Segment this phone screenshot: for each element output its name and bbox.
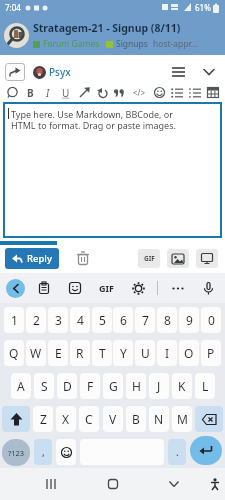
button[interactable] bbox=[151, 83, 167, 102]
staticText: S bbox=[41, 378, 48, 394]
button[interactable] bbox=[33, 277, 55, 299]
button[interactable]: P bbox=[201, 340, 221, 366]
staticText: 4 bbox=[77, 312, 84, 328]
staticText: E bbox=[55, 345, 62, 361]
button[interactable] bbox=[2, 406, 30, 432]
button[interactable]: U bbox=[58, 83, 74, 102]
staticText: Stratagem-21 - Signup (8/11) bbox=[33, 21, 181, 35]
staticText: A bbox=[17, 378, 25, 394]
staticText: Type here. Use Markdown, BBCode, or HTML… bbox=[11, 108, 176, 132]
button[interactable]: F bbox=[80, 373, 100, 399]
button[interactable] bbox=[167, 249, 189, 268]
button[interactable]: Type here. Use Markdown, BBCode, or HTML… bbox=[3, 102, 222, 238]
button[interactable]: ?123 bbox=[2, 439, 30, 466]
button[interactable]: Z bbox=[33, 406, 53, 432]
button[interactable]: 9 bbox=[179, 307, 199, 333]
button[interactable]: D bbox=[57, 373, 77, 399]
staticText: I bbox=[165, 345, 170, 361]
button[interactable]: H bbox=[126, 373, 146, 399]
staticText: J bbox=[157, 378, 161, 394]
button[interactable]: B bbox=[22, 83, 38, 102]
staticText: Psyx bbox=[49, 65, 71, 79]
button[interactable]: O bbox=[179, 340, 199, 366]
staticText: H bbox=[132, 378, 141, 394]
button[interactable]: B bbox=[126, 406, 146, 432]
button[interactable]: E bbox=[48, 340, 68, 366]
button[interactable]: Q bbox=[4, 340, 24, 366]
button[interactable]: C bbox=[79, 406, 99, 432]
button[interactable] bbox=[167, 277, 189, 299]
button[interactable]: Psyx bbox=[33, 65, 71, 79]
button[interactable] bbox=[76, 83, 92, 102]
button[interactable] bbox=[94, 83, 110, 102]
button[interactable] bbox=[4, 83, 20, 102]
staticText: U bbox=[62, 86, 70, 100]
button[interactable] bbox=[56, 439, 76, 465]
button[interactable]: I bbox=[157, 340, 177, 366]
staticText: X bbox=[62, 411, 70, 427]
button[interactable]: M bbox=[172, 406, 192, 432]
button[interactable]: T bbox=[92, 340, 112, 366]
button[interactable]: R bbox=[70, 340, 90, 366]
button[interactable] bbox=[6, 279, 25, 298]
staticText: 61% bbox=[195, 2, 211, 13]
staticText: U bbox=[141, 345, 150, 361]
button[interactable]: Stratagem-21 - Signup (8/11) bbox=[33, 21, 198, 50]
button[interactable] bbox=[197, 277, 219, 299]
button[interactable]: K bbox=[172, 373, 192, 399]
button[interactable] bbox=[200, 63, 218, 81]
button[interactable]: N bbox=[149, 406, 169, 432]
button[interactable]: G bbox=[103, 373, 123, 399]
button[interactable] bbox=[169, 83, 185, 102]
button[interactable]: 4 bbox=[70, 307, 90, 333]
button[interactable]: 6 bbox=[113, 307, 133, 333]
button[interactable] bbox=[127, 277, 149, 299]
button[interactable]: Reply bbox=[5, 248, 59, 269]
button[interactable] bbox=[5, 63, 25, 81]
button[interactable]: GIF bbox=[94, 276, 118, 300]
button[interactable] bbox=[190, 436, 222, 465]
button[interactable]: I bbox=[40, 83, 56, 102]
button[interactable] bbox=[205, 83, 221, 102]
button[interactable] bbox=[196, 249, 218, 268]
button[interactable]: W bbox=[26, 340, 46, 366]
button[interactable]: 1 bbox=[4, 307, 24, 333]
button[interactable]: 3 bbox=[48, 307, 68, 333]
button[interactable] bbox=[195, 406, 223, 432]
button[interactable]: 5 bbox=[92, 307, 112, 333]
button[interactable] bbox=[163, 473, 185, 495]
button[interactable] bbox=[40, 473, 62, 495]
staticText: W bbox=[30, 345, 42, 361]
button[interactable]: X bbox=[56, 406, 76, 432]
button[interactable]: 2 bbox=[26, 307, 46, 333]
button[interactable] bbox=[187, 83, 203, 102]
staticText: B bbox=[132, 411, 140, 427]
button[interactable]: 0 bbox=[201, 307, 221, 333]
button[interactable] bbox=[168, 63, 188, 81]
button[interactable]: L bbox=[195, 373, 215, 399]
button[interactable]: 8 bbox=[157, 307, 177, 333]
button[interactable]: </> bbox=[129, 83, 149, 102]
button[interactable]: 7 bbox=[135, 307, 155, 333]
button[interactable] bbox=[4, 23, 29, 48]
button[interactable] bbox=[208, 477, 222, 491]
button[interactable]: A bbox=[11, 373, 31, 399]
button[interactable]: V bbox=[103, 406, 123, 432]
button[interactable] bbox=[75, 249, 91, 267]
staticText: P bbox=[207, 345, 215, 361]
staticText: M bbox=[177, 411, 188, 427]
button[interactable]: . bbox=[168, 439, 186, 465]
button[interactable]: S bbox=[34, 373, 54, 399]
button[interactable] bbox=[102, 473, 124, 495]
button[interactable]: , bbox=[34, 439, 52, 465]
button[interactable] bbox=[111, 83, 127, 102]
staticText: K bbox=[178, 378, 186, 394]
button[interactable] bbox=[64, 277, 86, 299]
button[interactable]: J bbox=[149, 373, 169, 399]
button[interactable]: U bbox=[135, 340, 155, 366]
staticText: D bbox=[63, 378, 72, 394]
button[interactable]: Y bbox=[113, 340, 133, 366]
button[interactable]: GIF bbox=[138, 249, 160, 268]
staticText: Y bbox=[120, 345, 127, 361]
